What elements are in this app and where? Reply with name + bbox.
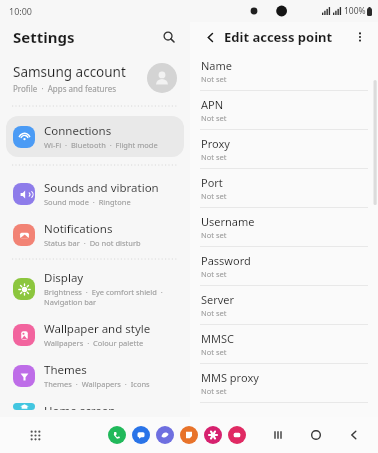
button[interactable]: Back [200,27,220,47]
staticText: Sounds and vibration [44,180,159,196]
button[interactable]: Search [157,25,181,49]
button[interactable]: Gallery [228,426,246,444]
button[interactable]: Themes [6,355,184,396]
button[interactable]: Notes [180,426,198,444]
staticText: Port [201,175,223,190]
staticText: Edit access point [224,28,350,46]
button[interactable]: Home [306,425,326,445]
button[interactable]: All apps [25,425,45,445]
button[interactable]: APN [190,90,378,129]
button[interactable]: Proxy [190,129,378,168]
staticText: Themes [44,362,87,378]
button[interactable]: Back [344,425,364,445]
button[interactable]: MMS proxy [190,363,378,402]
button[interactable]: Settings [204,426,222,444]
staticText: Username [201,214,255,229]
staticText: Display [44,270,84,286]
staticText: Not set [201,308,227,318]
staticText: Brightness · Eye comfort shield · [44,287,163,297]
staticText: Sound mode · Ringtone [44,197,131,207]
staticText: Proxy [201,136,230,151]
staticText: Not set [201,74,227,84]
staticText: 10:00 [9,5,33,17]
staticText: Not set [201,386,227,396]
button[interactable]: Password [190,246,378,285]
staticText: Connections [44,123,112,139]
button[interactable]: Display [6,263,184,314]
button[interactable]: Server [190,285,378,324]
button[interactable]: More options [350,27,370,47]
button[interactable]: Samsung account [0,52,190,104]
staticText: Not set [201,230,227,240]
button[interactable]: Name [190,52,378,90]
button[interactable]: Notifications [6,214,184,255]
staticText: Status bar · Do not disturb [44,238,141,248]
staticText: Not set [201,152,227,162]
button[interactable]: Internet [156,426,174,444]
staticText: Not set [201,347,227,357]
staticText: Home screen [44,403,116,410]
staticText: Not set [201,113,227,123]
staticText: Settings [13,27,75,47]
staticText: Name [201,58,233,73]
button[interactable]: Home screen [6,396,184,417]
button[interactable]: Recents [268,425,288,445]
staticText: Password [201,253,251,268]
staticText: APN [201,97,224,112]
button[interactable]: MMS port [190,402,378,417]
staticText: Notifications [44,221,113,237]
staticText: MMSC [201,331,234,346]
staticText: MMS proxy [201,370,259,385]
staticText: Wallpaper and style [44,321,151,337]
button[interactable]: Username [190,207,378,246]
staticText: Profile · Apps and features [13,83,117,94]
button[interactable]: Connections [6,116,184,157]
staticText: Not set [201,269,227,279]
button[interactable]: Messages [132,426,150,444]
staticText: Wi-Fi · Bluetooth · Flight mode [44,140,158,150]
button[interactable]: Port [190,168,378,207]
staticText: Wallpapers · Colour palette [44,338,144,348]
staticText: 100% [344,5,366,17]
staticText: Not set [201,191,227,201]
button[interactable]: MMSC [190,324,378,363]
staticText: Themes · Wallpapers · Icons [44,379,150,389]
button[interactable]: Sounds and vibration [6,173,184,214]
button[interactable]: Phone [108,426,126,444]
staticText: Samsung account [13,63,126,81]
staticText: Server [201,292,235,307]
staticText: Navigation bar [44,297,97,307]
button[interactable]: Wallpaper and style [6,314,184,355]
